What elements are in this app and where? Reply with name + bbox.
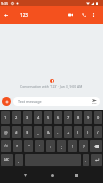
- button[interactable]: @: [1, 126, 10, 138]
- staticText: ": [28, 144, 30, 149]
- staticText: ABC: [4, 158, 10, 162]
- button[interactable]: *: [13, 140, 22, 152]
- button[interactable]: $: [23, 126, 32, 138]
- button[interactable]: +: [64, 126, 72, 138]
- staticText: SMS: [92, 102, 97, 105]
- button[interactable]: :: [46, 140, 55, 152]
- staticText: 4: [37, 115, 40, 120]
- button[interactable]: ': [35, 140, 44, 152]
- button[interactable]: Backspace: [90, 140, 102, 152]
- staticText: +: [67, 130, 70, 135]
- staticText: #: [15, 130, 18, 135]
- button[interactable]: .: [83, 154, 89, 166]
- staticText: 5: [47, 115, 50, 120]
- staticText: /: [97, 130, 99, 135]
- staticText: 6: [57, 115, 60, 120]
- button[interactable]: (: [74, 126, 82, 138]
- staticText: .: [85, 158, 87, 163]
- staticText: &: [47, 130, 50, 135]
- button[interactable]: Enter: [91, 154, 102, 166]
- button[interactable]: -: [54, 126, 62, 138]
- staticText: ,: [18, 158, 20, 163]
- staticText: 123: [20, 12, 29, 18]
- button[interactable]: 3: [23, 111, 32, 124]
- button[interactable]: 6: [54, 111, 62, 124]
- staticText: (: [77, 130, 79, 135]
- button[interactable]: 1: [1, 111, 10, 124]
- button[interactable]: Call: [77, 6, 90, 24]
- button[interactable]: Attach: [2, 97, 11, 106]
- button[interactable]: ): [84, 126, 92, 138]
- staticText: Text message: [18, 99, 89, 104]
- button[interactable]: =\<: [1, 140, 11, 152]
- button[interactable]: ": [24, 140, 33, 152]
- button[interactable]: 9: [84, 111, 92, 124]
- button[interactable]: #: [12, 126, 21, 138]
- staticText: 3: [26, 115, 29, 120]
- staticText: 1: [4, 115, 7, 120]
- staticText: !: [72, 144, 74, 149]
- button[interactable]: Home: [39, 167, 66, 183]
- button[interactable]: 8: [74, 111, 82, 124]
- button[interactable]: &: [44, 126, 52, 138]
- staticText: ): [87, 130, 89, 135]
- staticText: ;: [61, 144, 63, 149]
- button[interactable]: 5: [44, 111, 52, 124]
- staticText: ': [39, 144, 40, 149]
- button[interactable]: ,: [15, 154, 23, 166]
- staticText: :: [50, 144, 52, 149]
- button[interactable]: Back: [12, 167, 39, 183]
- button[interactable]: ;: [57, 140, 66, 152]
- staticText: _: [37, 130, 39, 135]
- button[interactable]: More options: [87, 6, 100, 24]
- staticText: 8: [77, 115, 80, 120]
- button[interactable]: Send SMS: [89, 97, 100, 106]
- staticText: Conversation with '123' · Jun 3, 9:00 AM: [20, 84, 83, 89]
- staticText: @: [4, 130, 8, 135]
- staticText: 0: [97, 115, 100, 120]
- staticText: 2: [15, 115, 18, 120]
- button[interactable]: ABC: [1, 154, 13, 166]
- button[interactable]: !: [68, 140, 77, 152]
- staticText: ?: [83, 144, 85, 149]
- button[interactable]: 4: [34, 111, 42, 124]
- staticText: -: [57, 130, 59, 135]
- button[interactable]: 2: [12, 111, 21, 124]
- button[interactable]: Recents: [63, 167, 90, 183]
- staticText: 9:35: [1, 1, 9, 6]
- button[interactable]: /: [94, 126, 102, 138]
- button[interactable]: 7: [64, 111, 72, 124]
- staticText: *: [16, 144, 19, 149]
- button[interactable]: Video call: [64, 6, 77, 24]
- button[interactable]: _: [34, 126, 42, 138]
- button[interactable]: 0: [94, 111, 102, 124]
- button[interactable]: ?: [79, 140, 88, 152]
- staticText: 9: [87, 115, 90, 120]
- staticText: $: [26, 130, 29, 135]
- staticText: =\<: [4, 144, 9, 148]
- staticText: 7: [67, 115, 70, 120]
- button[interactable]: Back: [0, 6, 12, 24]
